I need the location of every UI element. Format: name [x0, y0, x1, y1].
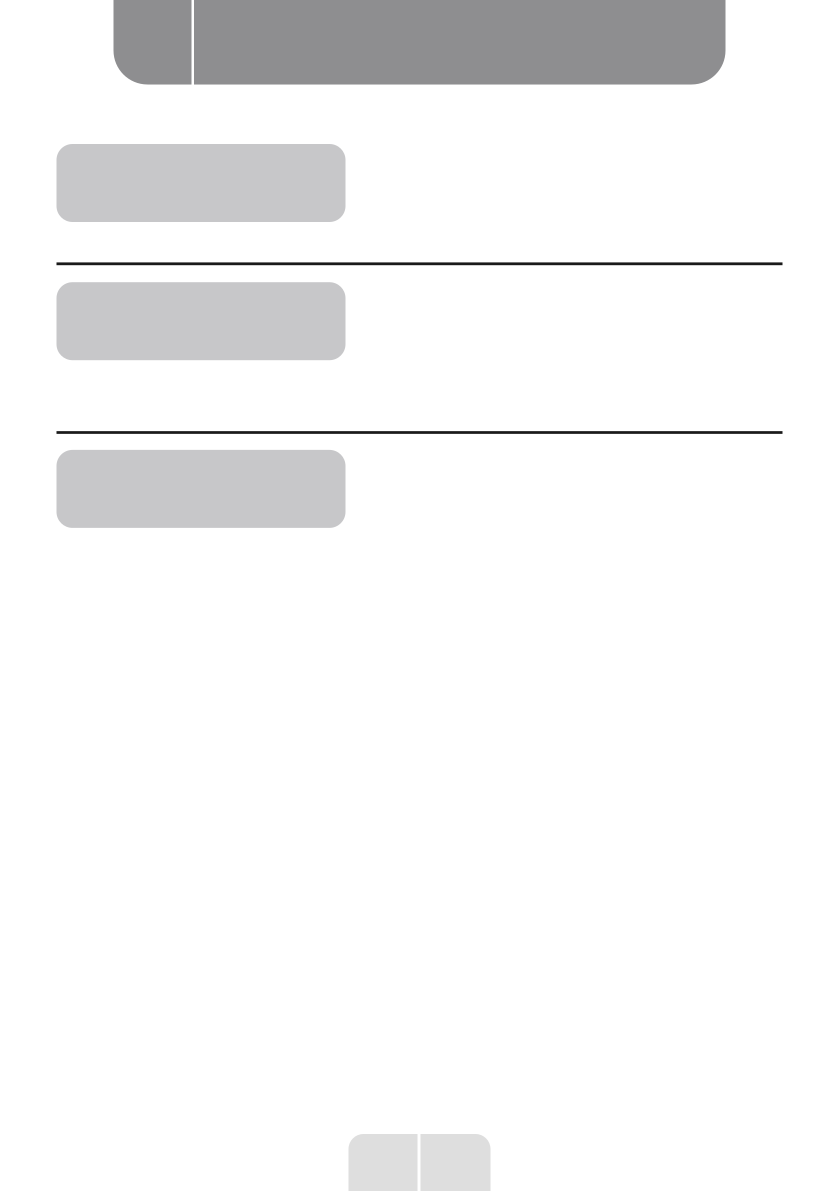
- button[interactable]: Back: [113, 0, 191, 84]
- button[interactable]: Row 3: [56, 450, 782, 528]
- button[interactable]: Row 1: [56, 144, 782, 222]
- button[interactable]: Second tab: [420, 1134, 490, 1191]
- button[interactable]: Title: [194, 0, 725, 84]
- button[interactable]: Row 2: [56, 282, 782, 360]
- button[interactable]: First tab: [348, 1134, 417, 1191]
